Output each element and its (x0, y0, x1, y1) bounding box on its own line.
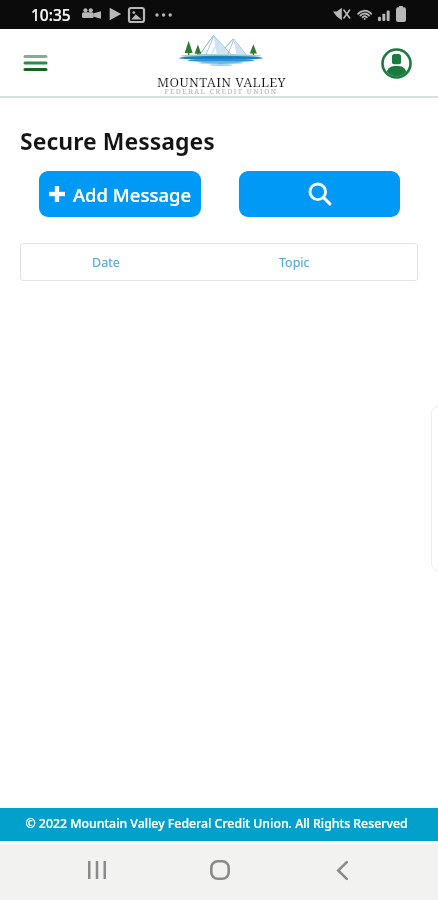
button[interactable]: Account (375, 42, 417, 84)
staticText: Date (92, 254, 120, 271)
staticText: Secure Messages (20, 125, 215, 156)
button[interactable]: Add Message (39, 171, 201, 217)
button[interactable]: Date (20, 243, 192, 281)
button[interactable]: Menu (14, 42, 56, 84)
button[interactable]: Search (239, 171, 400, 217)
button[interactable]: Home (196, 846, 244, 894)
staticText: FEDERAL CREDIT UNION (164, 87, 278, 97)
staticText: Add Message (73, 182, 192, 207)
staticText: MOUNTAIN VALLEY (157, 73, 286, 91)
staticText: © 2022 Mountain Valley Federal Credit Un… (25, 815, 408, 832)
button[interactable]: Recent apps (73, 846, 121, 894)
button[interactable]: Topic (192, 243, 396, 281)
button[interactable]: Back (318, 846, 366, 894)
staticText: 10:35 (31, 4, 71, 25)
staticText: Topic (279, 254, 310, 271)
